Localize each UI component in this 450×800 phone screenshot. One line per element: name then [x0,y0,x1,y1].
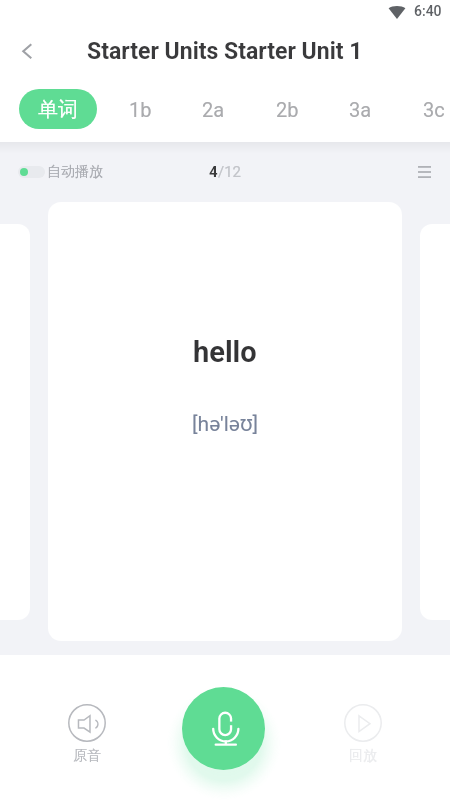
button[interactable]: Original audio [57,704,117,765]
button[interactable]: 自动播放 [18,163,103,181]
staticText: 自动播放 [47,163,103,181]
other: Playback [344,704,382,742]
button[interactable]: 1b [112,89,168,129]
button[interactable]: 2a [185,89,241,129]
button[interactable]: 3a [332,89,388,129]
staticText: 6:40 [414,3,442,19]
staticText: hello [193,335,257,369]
staticText: 3a [349,98,372,121]
button[interactable]: Menu [406,154,442,190]
staticText: 原音 [73,747,101,765]
staticText: 1b [129,98,152,121]
button[interactable]: 单词 [19,89,97,129]
other: Wi-Fi [388,6,406,19]
staticText: Starter Units Starter Unit 1 [87,38,363,65]
staticText: 2b [276,98,299,121]
staticText: 回放 [349,747,377,765]
staticText: /12 [218,163,242,181]
staticText: 3c [423,98,445,121]
button[interactable]: 2b [259,89,315,129]
staticText: 单词 [38,97,78,122]
other: Original audio [68,704,106,742]
button[interactable]: Back [10,34,46,70]
staticText: 4 [209,163,218,181]
button[interactable]: 3c [406,89,450,129]
button[interactable]: Record [182,687,265,770]
staticText: 2a [202,98,225,121]
button[interactable]: hello [48,202,402,641]
staticText: [hə'ləʊ] [192,409,259,438]
button[interactable]: Playback [333,704,393,765]
